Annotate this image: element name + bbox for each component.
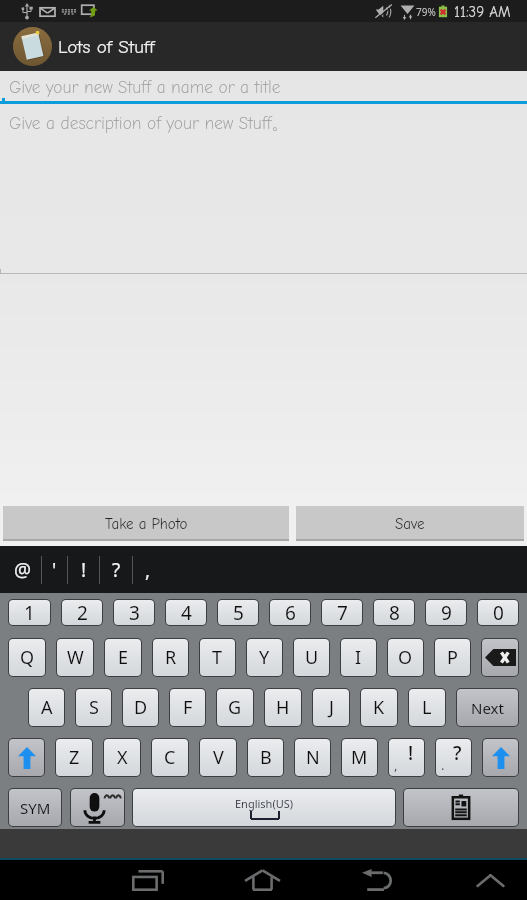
button[interactable]: R	[153, 639, 188, 676]
staticText: 8	[389, 600, 400, 625]
staticText: !	[81, 557, 87, 583]
staticText: Take a Photo	[105, 515, 188, 532]
button[interactable]: Shift	[9, 739, 44, 776]
button[interactable]: 6	[270, 600, 310, 625]
button[interactable]: E	[105, 639, 141, 676]
button[interactable]: 0	[478, 600, 518, 625]
button[interactable]: Home	[235, 860, 289, 900]
staticText: @	[14, 557, 32, 583]
staticText: C	[164, 745, 176, 770]
button[interactable]: P	[435, 639, 470, 676]
staticText: 7	[337, 600, 348, 625]
button[interactable]: Clipboard	[404, 789, 518, 826]
staticText: 11:39 AM	[454, 3, 511, 20]
staticText: P	[447, 645, 458, 670]
button[interactable]: F	[170, 689, 205, 726]
button[interactable]: 4	[166, 600, 206, 625]
staticText: 3	[129, 600, 140, 625]
button[interactable]: W	[57, 639, 93, 676]
staticText: '	[52, 557, 57, 583]
button[interactable]: Next	[457, 689, 518, 726]
staticText: H	[276, 695, 290, 720]
staticText: N	[306, 745, 320, 770]
button[interactable]: T	[200, 639, 235, 676]
button[interactable]: L	[409, 689, 445, 726]
staticText: 6	[285, 600, 296, 625]
button[interactable]: C	[152, 739, 188, 776]
button[interactable]: K	[361, 689, 397, 726]
button[interactable]: N	[295, 739, 330, 776]
staticText: 4	[181, 600, 192, 625]
button[interactable]: 3	[114, 600, 154, 625]
button[interactable]: Z	[56, 739, 92, 776]
button[interactable]: 2	[62, 600, 102, 625]
staticText: !	[408, 740, 414, 766]
button[interactable]: Shift	[483, 739, 518, 776]
button[interactable]: 1	[9, 600, 50, 625]
button[interactable]: H	[265, 689, 301, 726]
button[interactable]: '	[42, 547, 67, 593]
button[interactable]: !	[68, 547, 99, 593]
other: Clipboard	[449, 794, 473, 821]
staticText: Next	[471, 698, 504, 718]
staticText: .	[441, 756, 445, 774]
button[interactable]: Voice input	[71, 789, 124, 826]
other: Backspace	[485, 649, 516, 666]
button[interactable]: @	[5, 547, 41, 593]
button[interactable]: Give a description of your new Stuff。	[9, 113, 289, 134]
button[interactable]: U	[294, 639, 329, 676]
button[interactable]: 5	[218, 600, 258, 625]
button[interactable]: ,	[389, 739, 424, 776]
button[interactable]: Give your new Stuff a name or a title	[9, 78, 281, 98]
staticText: 2	[77, 600, 88, 625]
staticText: R	[165, 645, 177, 670]
button[interactable]: SYM	[9, 789, 61, 826]
button[interactable]: 8	[374, 600, 414, 625]
staticText: Q	[20, 645, 35, 670]
button[interactable]: Take a Photo	[3, 506, 289, 541]
button[interactable]: B	[248, 739, 283, 776]
staticText: 79%	[416, 5, 436, 19]
button[interactable]: I	[341, 639, 376, 676]
button[interactable]: Back	[349, 860, 403, 900]
button[interactable]: M	[342, 739, 377, 776]
staticText: SYM	[20, 798, 51, 818]
button[interactable]: ?	[100, 547, 132, 593]
button[interactable]: Save	[296, 506, 524, 541]
button[interactable]: D	[123, 689, 158, 726]
staticText: A	[41, 695, 53, 720]
staticText: L	[422, 695, 432, 720]
button[interactable]: S	[76, 689, 111, 726]
button[interactable]: X	[104, 739, 140, 776]
button[interactable]: ,	[133, 547, 163, 593]
staticText: Z	[69, 745, 80, 770]
staticText: ?	[112, 557, 121, 583]
button[interactable]: Backspace	[482, 639, 518, 676]
other: Shift	[18, 747, 36, 769]
button[interactable]: A	[29, 689, 64, 726]
staticText: ?	[453, 740, 462, 766]
button[interactable]: 7	[322, 600, 362, 625]
button[interactable]: V	[200, 739, 236, 776]
staticText: English(US)	[235, 796, 294, 811]
staticText: F	[183, 695, 193, 720]
button[interactable]: J	[313, 689, 349, 726]
staticText: I	[355, 645, 362, 670]
button[interactable]: G	[217, 689, 253, 726]
staticText: U	[305, 645, 319, 670]
button[interactable]: Q	[9, 639, 45, 676]
button[interactable]: O	[388, 639, 423, 676]
staticText: 5	[233, 600, 244, 625]
button[interactable]: English(US)	[133, 789, 395, 826]
button[interactable]: Hide keyboard	[463, 860, 517, 900]
staticText: Save	[395, 515, 425, 532]
staticText: Lots of Stuff	[58, 36, 155, 58]
staticText: O	[398, 645, 413, 670]
staticText: B	[260, 745, 272, 770]
button[interactable]: 9	[426, 600, 466, 625]
staticText: W	[67, 645, 84, 670]
other: Shift	[492, 747, 510, 769]
button[interactable]: Y	[247, 639, 282, 676]
button[interactable]: Recents	[121, 860, 175, 900]
button[interactable]: .	[436, 739, 471, 776]
